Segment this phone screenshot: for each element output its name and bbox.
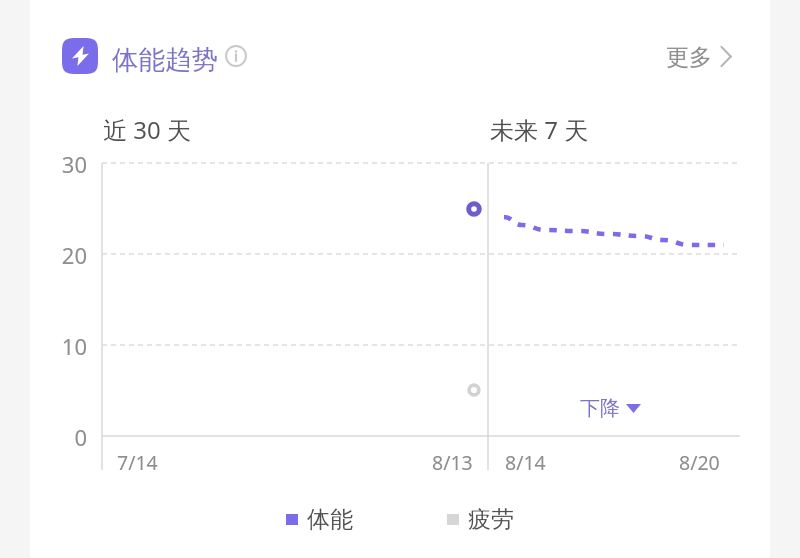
button[interactable]: 体能趋势: [62, 32, 218, 80]
staticText: 未来 7 天: [490, 113, 589, 146]
staticText: 8/13: [432, 449, 473, 476]
staticText: 下降: [580, 396, 620, 421]
staticText: 体能: [307, 505, 353, 534]
staticText: 20: [61, 240, 87, 268]
staticText: 30: [61, 149, 87, 177]
button[interactable]: 更多: [654, 32, 744, 80]
staticText: 8/14: [505, 449, 546, 476]
staticText: 7/14: [117, 449, 158, 476]
staticText: 疲劳: [468, 505, 514, 534]
button[interactable]: Info: [222, 42, 250, 70]
staticText: 8/20: [679, 449, 720, 476]
staticText: 10: [61, 331, 87, 359]
staticText: 0: [74, 422, 87, 450]
staticText: 近 30 天: [103, 113, 191, 146]
staticText: 更多: [666, 43, 712, 72]
staticText: 体能趋势: [112, 43, 218, 76]
